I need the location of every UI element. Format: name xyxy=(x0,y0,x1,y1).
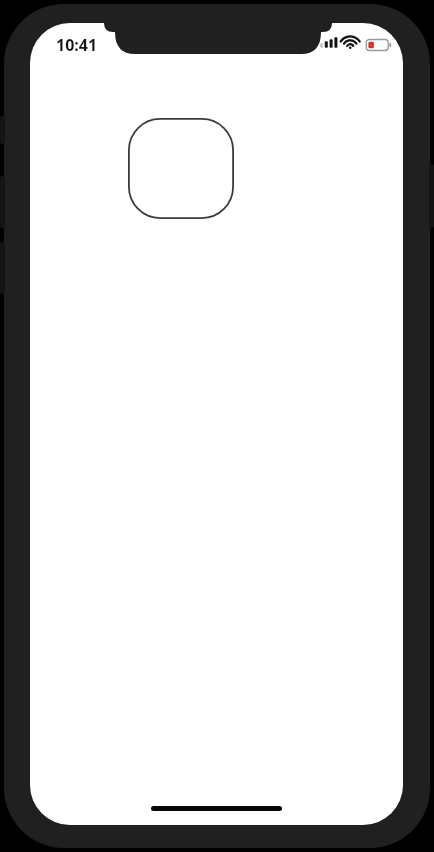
button[interactable]: App icon placeholder xyxy=(128,118,234,219)
staticText: 10:41 xyxy=(56,34,98,56)
